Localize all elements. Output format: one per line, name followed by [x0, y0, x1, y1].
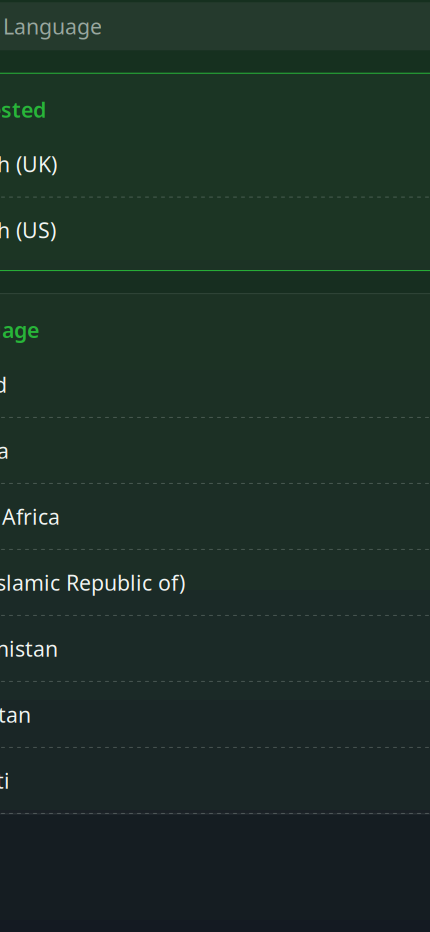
button[interactable]: Tajikistan [0, 682, 430, 747]
button[interactable]: South Africa [0, 484, 430, 549]
button[interactable]: Search Language [0, 2, 430, 50]
button[interactable]: English (US) [0, 198, 430, 263]
button[interactable]: Iran (Islamic Republic of) [0, 550, 430, 615]
staticText: Poland [0, 370, 7, 398]
staticText: Kiribati [0, 766, 10, 794]
button[interactable]: Guinea [0, 418, 430, 483]
staticText: Tajikistan [0, 700, 31, 728]
button[interactable]: Afghanistan [0, 616, 430, 681]
staticText: South Africa [0, 502, 60, 530]
staticText: English (US) [0, 216, 56, 244]
staticText: Iran (Islamic Republic of) [0, 568, 185, 596]
staticText: Guinea [0, 436, 9, 464]
staticText: Afghanistan [0, 634, 58, 662]
staticText: English (UK) [0, 150, 57, 178]
staticText: Search Language [0, 12, 102, 40]
button[interactable]: Poland [0, 352, 430, 417]
staticText: Suggested [0, 95, 46, 124]
staticText: Language [0, 316, 39, 344]
button[interactable]: Kiribati [0, 748, 430, 813]
button[interactable]: English (UK) [0, 132, 430, 197]
